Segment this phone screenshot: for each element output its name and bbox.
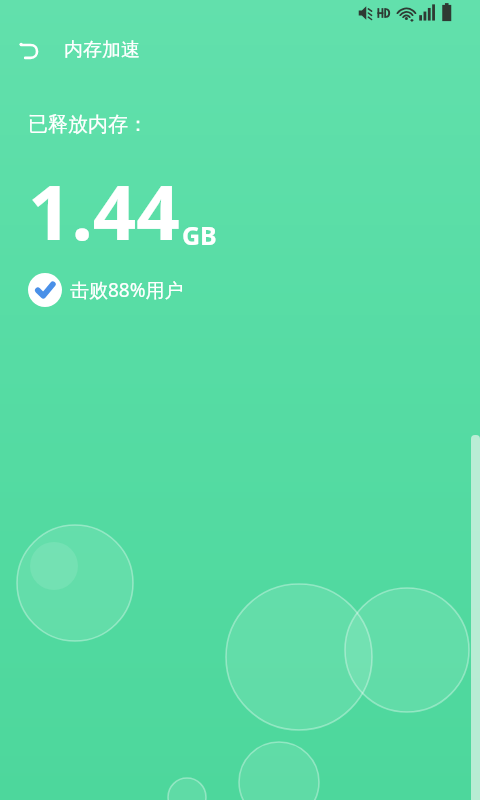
staticText: GB [182,218,217,252]
staticText: 已释放内存： [28,112,148,137]
staticText: 击败88%用户 [70,277,184,303]
staticText: 内存加速 [64,38,140,62]
staticText: 1.44 [28,159,180,263]
button[interactable]: 击败88%用户 [28,273,184,307]
button[interactable]: Back [8,28,52,72]
